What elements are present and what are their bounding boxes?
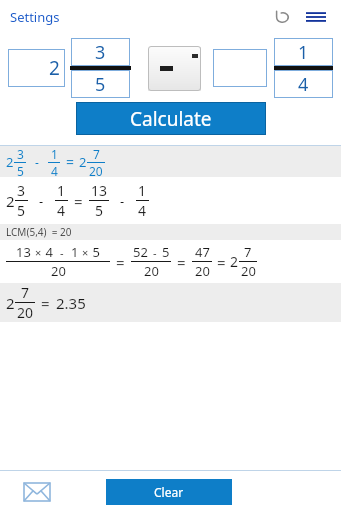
button[interactable]: 3 bbox=[71, 38, 130, 66]
staticText: 7 bbox=[21, 283, 30, 302]
staticText: 13 bbox=[91, 181, 108, 200]
staticText: 3 bbox=[17, 146, 24, 162]
staticText: 2 bbox=[49, 55, 60, 81]
staticText: 1 bbox=[138, 181, 147, 200]
staticText: - bbox=[153, 245, 157, 260]
button[interactable]: 2 bbox=[0, 177, 341, 224]
button[interactable]: Menu bbox=[301, 2, 331, 32]
button[interactable]: LCM(5,4) = 20 bbox=[0, 224, 341, 240]
staticText: 5 bbox=[89, 243, 100, 261]
button[interactable]: Undo bbox=[267, 2, 297, 32]
staticText: 3 bbox=[17, 181, 26, 200]
staticText: 1 bbox=[57, 181, 66, 200]
button[interactable] bbox=[213, 49, 267, 87]
button[interactable]: 13 bbox=[0, 240, 341, 283]
button[interactable]: 4 bbox=[274, 70, 333, 98]
staticText: 1 bbox=[298, 40, 309, 65]
button[interactable]: Clear bbox=[106, 479, 232, 505]
staticText: 1 bbox=[71, 243, 82, 261]
staticText: 2 bbox=[79, 153, 87, 171]
staticText: - bbox=[39, 192, 44, 210]
staticText: 5 bbox=[95, 201, 104, 220]
staticText: 20 bbox=[241, 262, 256, 280]
staticText: 20 bbox=[144, 262, 159, 280]
button[interactable]: Operator minus bbox=[148, 46, 201, 91]
staticText: 5 bbox=[95, 72, 106, 97]
staticText: × bbox=[82, 245, 89, 260]
staticText: 4 bbox=[51, 163, 58, 177]
staticText: 4 bbox=[57, 201, 66, 220]
staticText: 20 bbox=[89, 163, 103, 177]
button[interactable]: 2 bbox=[8, 49, 65, 87]
staticText: 2.35 bbox=[56, 293, 86, 313]
staticText: 2 bbox=[6, 153, 14, 171]
staticText: = bbox=[74, 191, 83, 211]
staticText: 4 bbox=[42, 243, 53, 261]
button[interactable]: 1 bbox=[274, 38, 333, 66]
staticText: Settings bbox=[10, 8, 60, 26]
staticText: 3 bbox=[95, 40, 106, 65]
staticText: 20 bbox=[51, 262, 66, 280]
staticText: Calculate bbox=[130, 106, 212, 132]
staticText: 52 bbox=[133, 243, 148, 261]
staticText: = bbox=[66, 152, 75, 171]
staticText: 47 bbox=[195, 243, 210, 261]
staticText: - bbox=[35, 154, 39, 170]
staticText: 5 bbox=[162, 243, 170, 261]
staticText: 2 bbox=[6, 293, 15, 313]
staticText: - bbox=[120, 192, 125, 210]
staticText: 4 bbox=[298, 72, 309, 97]
button[interactable]: Calculate bbox=[76, 102, 266, 135]
staticText: - bbox=[60, 245, 64, 260]
staticText: 5 bbox=[17, 201, 26, 220]
staticText: 1 bbox=[51, 146, 58, 162]
button[interactable]: Email result bbox=[20, 478, 54, 506]
staticText: 13 bbox=[16, 243, 35, 261]
staticText: × bbox=[35, 245, 42, 260]
staticText: 20 bbox=[17, 303, 34, 322]
staticText: = bbox=[177, 252, 186, 272]
staticText: 20 bbox=[195, 262, 210, 280]
button[interactable]: Settings bbox=[0, 4, 68, 30]
button[interactable]: 2 bbox=[0, 283, 341, 322]
staticText: = bbox=[217, 252, 226, 272]
button[interactable]: 2 bbox=[0, 146, 341, 177]
button[interactable]: 5 bbox=[71, 70, 130, 98]
staticText: 7 bbox=[244, 243, 252, 261]
staticText: LCM(5,4) = 20 bbox=[6, 225, 72, 239]
staticText: 7 bbox=[93, 146, 100, 162]
staticText: 2 bbox=[230, 252, 239, 271]
staticText: 5 bbox=[17, 163, 24, 177]
staticText: 4 bbox=[138, 201, 147, 220]
staticText: Clear bbox=[154, 484, 184, 500]
staticText: = bbox=[116, 252, 125, 272]
staticText: = bbox=[41, 293, 50, 313]
staticText: 2 bbox=[6, 191, 15, 211]
